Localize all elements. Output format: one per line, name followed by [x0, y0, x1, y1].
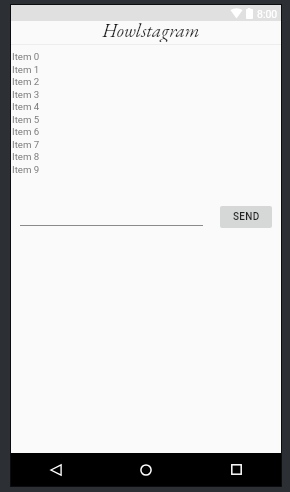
button[interactable]: Item 4: [11, 101, 281, 113]
button[interactable]: Item 9: [11, 164, 281, 176]
button[interactable]: Item 1: [11, 64, 281, 76]
staticText: Item 5: [12, 114, 40, 125]
button[interactable]: Back: [33, 453, 79, 486]
staticText: Howlstagram: [102, 18, 200, 42]
staticText: Item 9: [12, 164, 40, 175]
staticText: Item 8: [12, 151, 40, 162]
staticText: Item 1: [12, 64, 40, 75]
staticText: 8:00: [257, 8, 278, 20]
button[interactable]: Item 6: [11, 126, 281, 138]
staticText: Item 3: [12, 89, 40, 100]
button[interactable]: Recent apps: [213, 453, 259, 486]
button[interactable]: Item 7: [11, 139, 281, 151]
button[interactable]: Item 8: [11, 151, 281, 163]
staticText: Item 0: [12, 51, 40, 62]
staticText: Item 6: [12, 126, 40, 137]
button[interactable]: SEND: [220, 206, 272, 228]
staticText: Item 2: [12, 76, 40, 87]
button[interactable]: Home: [123, 453, 169, 486]
button[interactable]: Item 0: [11, 51, 281, 63]
button[interactable]: Item 2: [11, 76, 281, 88]
button[interactable]: Item 3: [11, 89, 281, 101]
button[interactable]: Item 5: [11, 114, 281, 126]
staticText: Item 7: [12, 139, 40, 150]
staticText: SEND: [233, 211, 260, 223]
staticText: Item 4: [12, 101, 40, 112]
button[interactable]: [20, 204, 203, 230]
